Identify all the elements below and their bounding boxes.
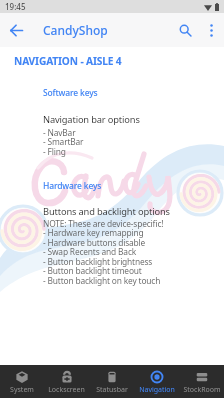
button[interactable]: Back bbox=[3, 17, 29, 43]
staticText: - Fling bbox=[43, 146, 66, 157]
button[interactable]: StockRoom bbox=[179, 365, 224, 398]
staticText: StockRoom bbox=[183, 385, 221, 395]
button[interactable]: Search bbox=[171, 16, 199, 44]
staticText: Buttons and backlight options bbox=[43, 205, 170, 218]
button[interactable]: Navigation bbox=[134, 365, 179, 398]
staticText: - Hardware buttons disable bbox=[43, 237, 146, 248]
staticText: Navigation bar options bbox=[43, 113, 140, 126]
staticText: NAVIGATION - AISLE 4 bbox=[14, 54, 122, 68]
button[interactable]: Statusbar bbox=[89, 365, 134, 398]
staticText: - NavBar bbox=[43, 127, 76, 138]
staticText: - Button backlight timeout bbox=[43, 265, 142, 276]
staticText: CandyShop bbox=[43, 22, 108, 38]
staticText: Hardware keys bbox=[43, 180, 102, 192]
staticText: - SmartBar bbox=[43, 136, 84, 147]
staticText: Navigation bbox=[139, 385, 175, 395]
staticText: Software keys bbox=[43, 87, 98, 99]
staticText: NOTE: These are device-specific! bbox=[43, 218, 164, 229]
button[interactable]: More options bbox=[199, 18, 223, 42]
button[interactable]: System bbox=[0, 365, 44, 398]
staticText: Lockscreen bbox=[48, 385, 85, 395]
staticText: Statusbar bbox=[96, 385, 128, 395]
staticText: - Hardware key remapping bbox=[43, 227, 144, 238]
staticText: - Button backlight brightness bbox=[43, 256, 153, 267]
staticText: 19:45 bbox=[5, 1, 26, 12]
staticText: - Button backlight on key touch bbox=[43, 275, 161, 286]
staticText: System bbox=[10, 385, 34, 395]
button[interactable]: Lockscreen bbox=[44, 365, 89, 398]
staticText: - Swap Recents and Back bbox=[43, 246, 137, 257]
